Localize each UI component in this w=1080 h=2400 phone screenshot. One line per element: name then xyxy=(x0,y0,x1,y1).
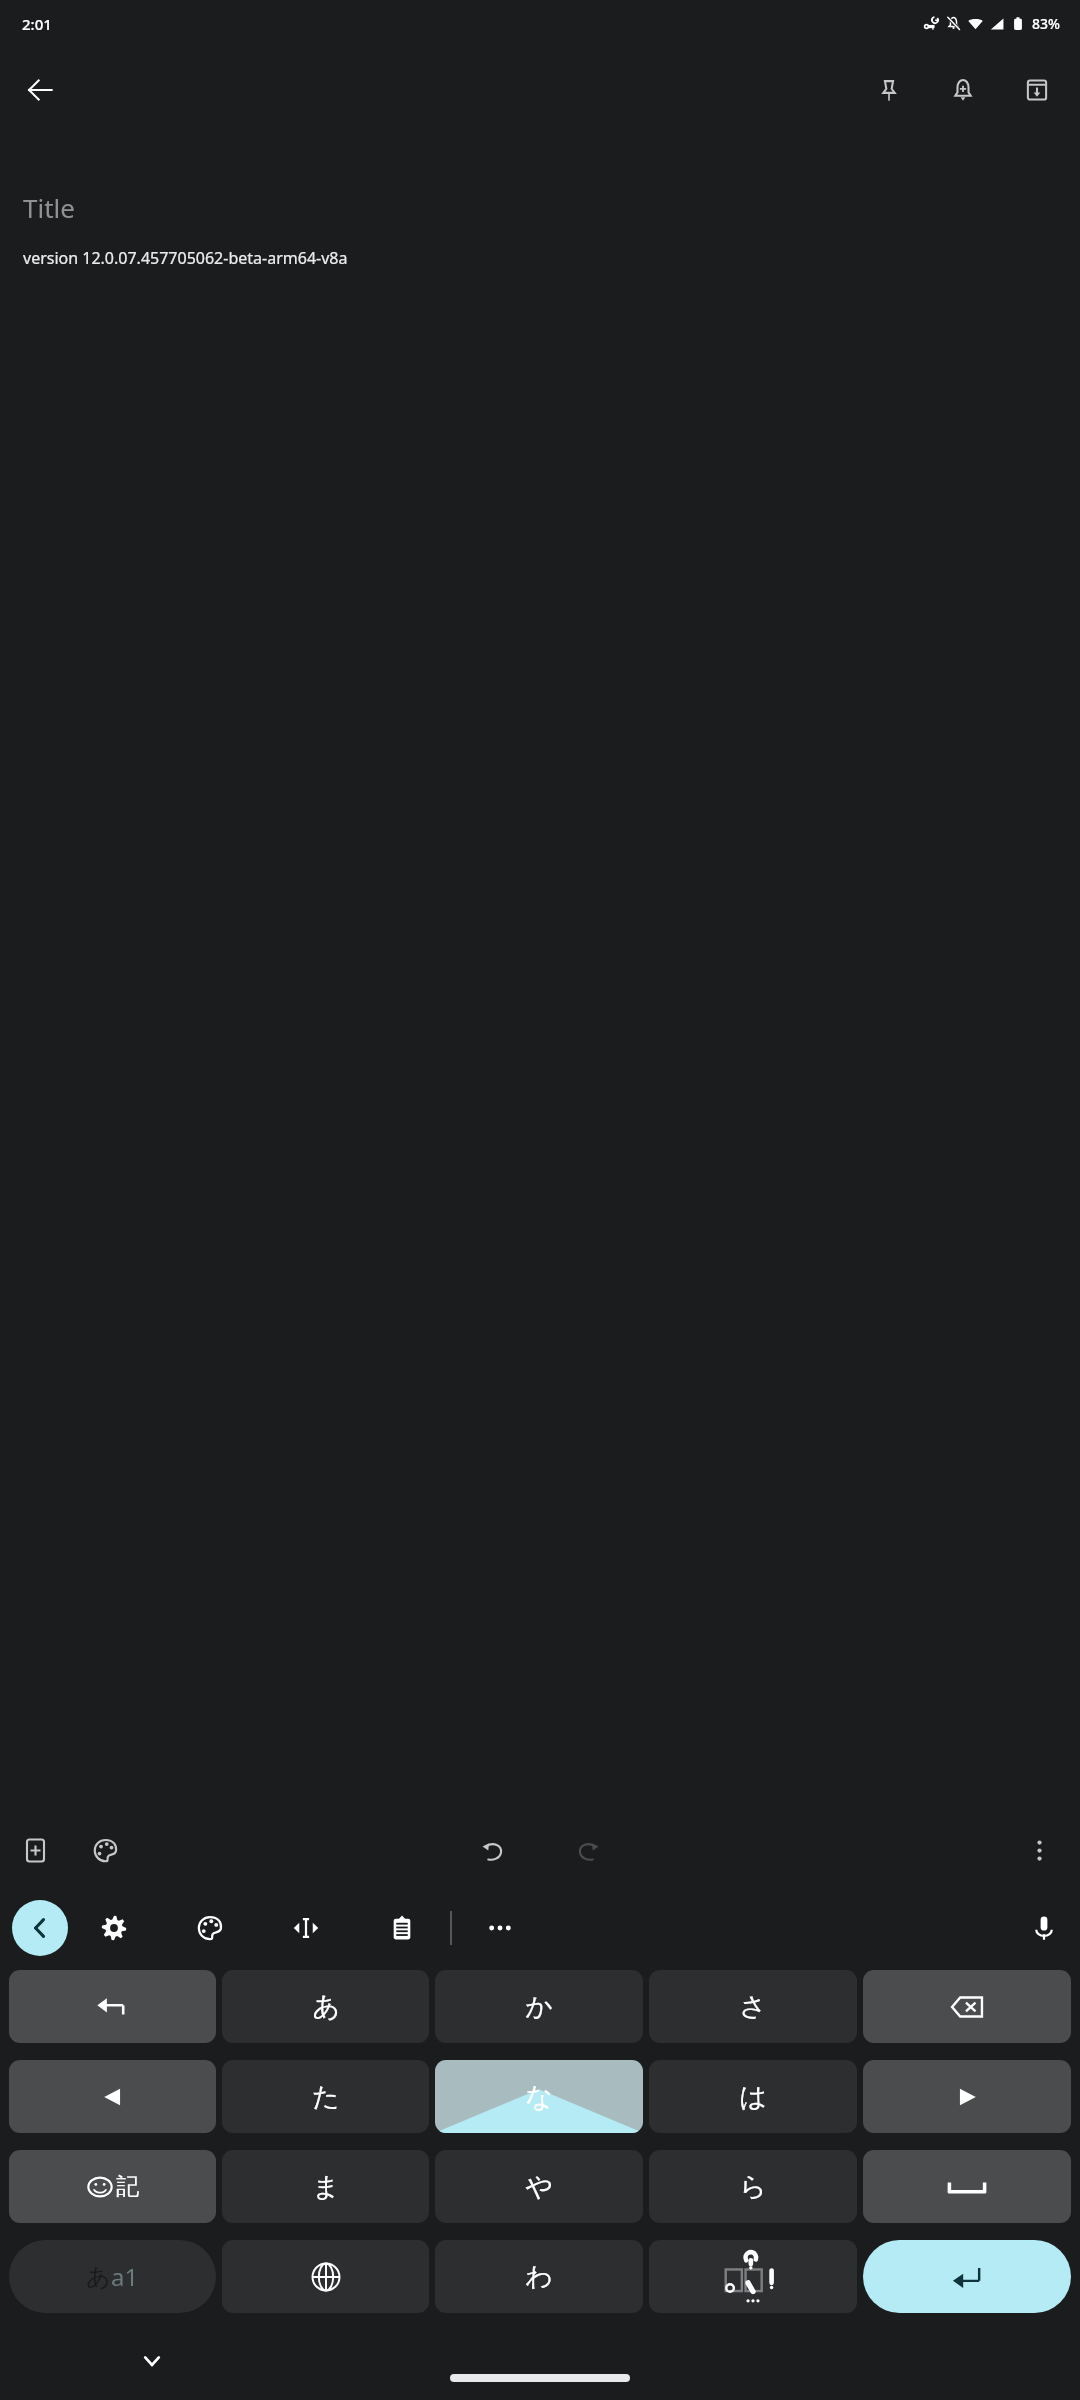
staticText: た xyxy=(312,2080,340,2114)
button[interactable]: Undo xyxy=(463,1821,521,1879)
button[interactable]: Switch input mode xyxy=(9,2240,216,2313)
staticText: あ xyxy=(86,2262,111,2292)
button[interactable]: Emoji and symbols xyxy=(9,2150,216,2223)
staticText: a1 xyxy=(111,2260,139,2293)
button[interactable]: た xyxy=(222,2060,429,2133)
button[interactable]: ま xyxy=(222,2150,429,2223)
button[interactable]: Voice input xyxy=(1018,1902,1070,1954)
button[interactable]: Hide keyboard xyxy=(130,2339,174,2383)
staticText: 83% xyxy=(1032,14,1060,33)
staticText: ま xyxy=(312,2170,340,2204)
button[interactable]: さ xyxy=(649,1970,857,2043)
button[interactable]: わ xyxy=(435,2240,643,2313)
button[interactable]: Cursor right xyxy=(863,2060,1071,2133)
staticText: 2:01 xyxy=(22,14,52,34)
staticText: さ xyxy=(739,1990,767,2024)
button[interactable]: Archive xyxy=(1008,61,1066,119)
staticText: Title xyxy=(23,190,75,225)
button[interactable]: Add reminder xyxy=(934,61,992,119)
button[interactable]: Cursor left xyxy=(9,2060,216,2133)
button[interactable]: Themes xyxy=(184,1902,236,1954)
button[interactable]: Backspace xyxy=(863,1970,1071,2043)
button[interactable]: Background colour xyxy=(76,1821,134,1879)
button[interactable]: Redo xyxy=(559,1821,617,1879)
staticText: あ xyxy=(312,1990,340,2024)
button[interactable]: Text editing xyxy=(280,1902,332,1954)
button[interactable]: は xyxy=(649,2060,857,2133)
button[interactable]: か xyxy=(435,1970,643,2043)
staticText: 記 xyxy=(116,2172,139,2201)
button[interactable]: な xyxy=(435,2060,643,2133)
button[interactable]: Enter xyxy=(863,2240,1071,2313)
staticText: version 12.0.07.457705062-beta-arm64-v8a xyxy=(23,247,348,269)
button[interactable]: Add xyxy=(6,1821,64,1879)
button[interactable]: Punctuation xyxy=(649,2240,857,2313)
button[interactable]: More xyxy=(474,1902,526,1954)
button[interactable]: Settings xyxy=(88,1902,140,1954)
button[interactable]: Change language xyxy=(222,2240,429,2313)
staticText: か xyxy=(525,1990,553,2024)
button[interactable]: Clipboard xyxy=(376,1902,428,1954)
button[interactable]: More options xyxy=(1010,1821,1068,1879)
button[interactable]: Expand toolbar xyxy=(12,1900,68,1956)
button[interactable]: Space xyxy=(863,2150,1071,2223)
staticText: は xyxy=(739,2080,767,2114)
staticText: や xyxy=(525,2170,553,2204)
button[interactable]: Pin xyxy=(860,61,918,119)
staticText: な xyxy=(525,2080,553,2114)
staticText: ら xyxy=(739,2170,767,2204)
button[interactable]: あ xyxy=(222,1970,429,2043)
button[interactable]: Back xyxy=(10,60,70,120)
button[interactable]: Return to previous xyxy=(9,1970,216,2043)
staticText: わ xyxy=(525,2260,553,2294)
button[interactable]: や xyxy=(435,2150,643,2223)
button[interactable]: ら xyxy=(649,2150,857,2223)
